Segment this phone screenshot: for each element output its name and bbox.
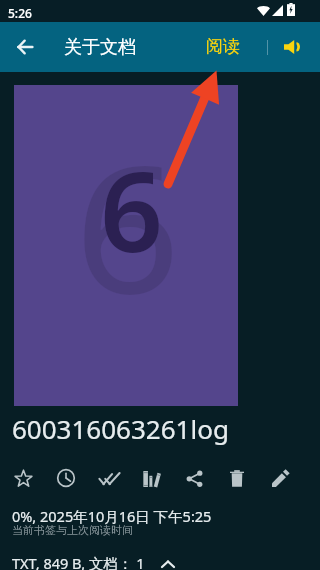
button[interactable]: Read aloud [272,22,312,72]
button[interactable]: Recent [47,459,85,497]
button[interactable]: TXT, 849 B, 文档： 1 [0,545,320,570]
button[interactable]: Delete [218,459,256,497]
staticText: TXT, 849 B, 文档： 1 [12,553,145,570]
button[interactable]: Share [175,459,213,497]
button[interactable]: Edit [261,459,299,497]
button[interactable]: Bookshelf [132,459,170,497]
button[interactable]: Mark as read [90,459,128,497]
staticText: 当前书签与上次阅读时间 [12,523,133,537]
staticText: 6 [100,134,163,284]
staticText: 6 [74,105,181,345]
staticText: 阅读 [206,36,240,57]
button[interactable]: Back [5,27,44,66]
staticText: 0%, 2025年10月16日 下午5:25 [12,506,212,526]
button[interactable]: Favorite [4,459,42,497]
staticText: 关于文档 [64,36,136,59]
staticText: 5:26 [8,5,32,21]
button[interactable]: 阅读 [196,22,252,72]
staticText: 600316063261log [12,411,229,446]
